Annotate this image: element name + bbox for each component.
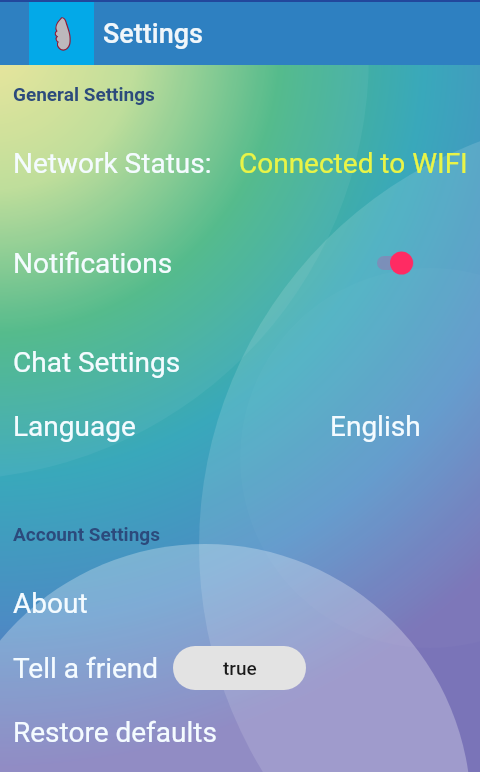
button[interactable]: About <box>13 587 88 620</box>
staticText: true <box>223 657 257 679</box>
button[interactable]: Connected to WIFI <box>239 147 468 180</box>
button[interactable]: Tell a friend <box>13 652 159 685</box>
button[interactable]: Notifications <box>13 247 173 280</box>
button[interactable]: General Settings <box>13 83 155 105</box>
button[interactable]: Network Status: <box>13 147 212 180</box>
button[interactable]: Account Settings <box>13 523 160 545</box>
button[interactable]: Chat Settings <box>13 346 181 379</box>
button[interactable]: Notifications toggle <box>370 239 418 287</box>
button[interactable]: Settings <box>0 2 480 65</box>
button[interactable]: Restore defaults <box>13 716 217 749</box>
staticText: Settings <box>103 18 203 50</box>
button[interactable]: Language <box>13 410 136 443</box>
button[interactable]: English <box>330 410 421 443</box>
button[interactable]: true <box>173 646 306 690</box>
